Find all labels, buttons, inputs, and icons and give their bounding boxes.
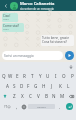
button[interactable]: Change language xyxy=(20,101,27,112)
button[interactable]: S xyxy=(11,81,18,91)
button[interactable]: T xyxy=(28,71,36,81)
staticText: M xyxy=(60,93,65,99)
staticText: Marco Caltanetta xyxy=(20,1,55,7)
staticText: H xyxy=(42,83,46,89)
staticText: G xyxy=(34,83,38,89)
staticText: T xyxy=(31,73,34,79)
button[interactable]: I xyxy=(52,71,60,81)
staticText: 10:24 xyxy=(3,28,9,31)
staticText: W xyxy=(8,73,13,79)
staticText: Cosa fai stasera? xyxy=(42,40,67,44)
staticText: Tutto bene, grazie xyxy=(42,36,69,40)
button[interactable]: Italiano xyxy=(28,104,55,109)
staticText: U xyxy=(46,73,50,79)
staticText: 10:24 xyxy=(3,18,9,21)
staticText: Z xyxy=(13,93,16,99)
button[interactable]: U xyxy=(44,71,52,81)
staticText: I xyxy=(55,73,57,79)
staticText: V xyxy=(37,93,40,99)
button[interactable]: D xyxy=(18,81,25,91)
staticText: X xyxy=(21,93,24,99)
button[interactable]: Scrivi un messaggio xyxy=(2,51,63,60)
staticText: O xyxy=(62,73,66,79)
staticText: R xyxy=(23,73,26,79)
button[interactable]: G xyxy=(32,81,40,91)
button[interactable]: . xyxy=(56,101,63,112)
button[interactable]: X xyxy=(18,91,26,101)
button[interactable]: O xyxy=(60,71,68,81)
staticText: D xyxy=(20,83,24,89)
staticText: Y xyxy=(39,73,42,79)
button[interactable]: Expand suggestions xyxy=(68,64,74,70)
staticText: Italiano xyxy=(37,105,46,108)
button[interactable]: A xyxy=(4,81,11,91)
button[interactable]: B xyxy=(42,91,50,101)
button[interactable]: ?1☺ xyxy=(1,101,13,112)
button[interactable]: C xyxy=(26,91,34,101)
staticText: N xyxy=(52,93,56,99)
button[interactable]: Ciao! xyxy=(2,13,18,22)
button[interactable]: Enter xyxy=(63,101,75,112)
button[interactable]: R xyxy=(21,71,28,81)
staticText: C xyxy=(29,93,32,99)
staticText: Scrivi un messaggio xyxy=(4,54,34,58)
button[interactable]: Y xyxy=(36,71,44,81)
button[interactable]: N xyxy=(50,91,58,101)
staticText: J xyxy=(51,83,53,89)
staticText: Come stai? xyxy=(3,24,20,28)
staticText: P xyxy=(71,73,74,79)
staticText: Ciao! xyxy=(3,14,11,18)
button[interactable]: Z xyxy=(10,91,18,101)
button[interactable]: Tutto bene, grazie xyxy=(41,35,74,46)
staticText: B xyxy=(45,93,48,99)
button[interactable]: P xyxy=(68,71,76,81)
button[interactable]: F xyxy=(25,81,32,91)
button[interactable]: Backspace xyxy=(66,91,76,101)
staticText: . xyxy=(59,104,61,110)
staticText: Q xyxy=(2,73,6,79)
button[interactable]: V xyxy=(34,91,42,101)
button[interactable]: Shift xyxy=(0,91,10,101)
staticText: L xyxy=(67,83,70,89)
staticText: K xyxy=(59,83,62,89)
staticText: , xyxy=(16,104,18,110)
button[interactable]: Contact avatar xyxy=(10,2,18,10)
button[interactable]: Q xyxy=(0,71,7,81)
staticText: F xyxy=(27,83,30,89)
button[interactable]: J xyxy=(48,81,56,91)
button[interactable]: , xyxy=(13,101,20,112)
button[interactable]: H xyxy=(40,81,48,91)
button[interactable]: K xyxy=(56,81,64,91)
button[interactable]: L xyxy=(64,81,72,91)
button[interactable]: E xyxy=(14,71,21,81)
button[interactable]: Send xyxy=(65,51,74,60)
staticText: sta scrivendo un messaggio xyxy=(20,7,54,11)
button[interactable]: Back xyxy=(2,2,9,9)
staticText: ?1☺ xyxy=(4,105,11,109)
button[interactable]: Come stai? xyxy=(2,23,24,32)
staticText: S xyxy=(13,83,16,89)
staticText: E xyxy=(16,73,19,79)
button[interactable]: M xyxy=(58,91,66,101)
button[interactable]: W xyxy=(7,71,14,81)
staticText: A xyxy=(6,83,9,89)
